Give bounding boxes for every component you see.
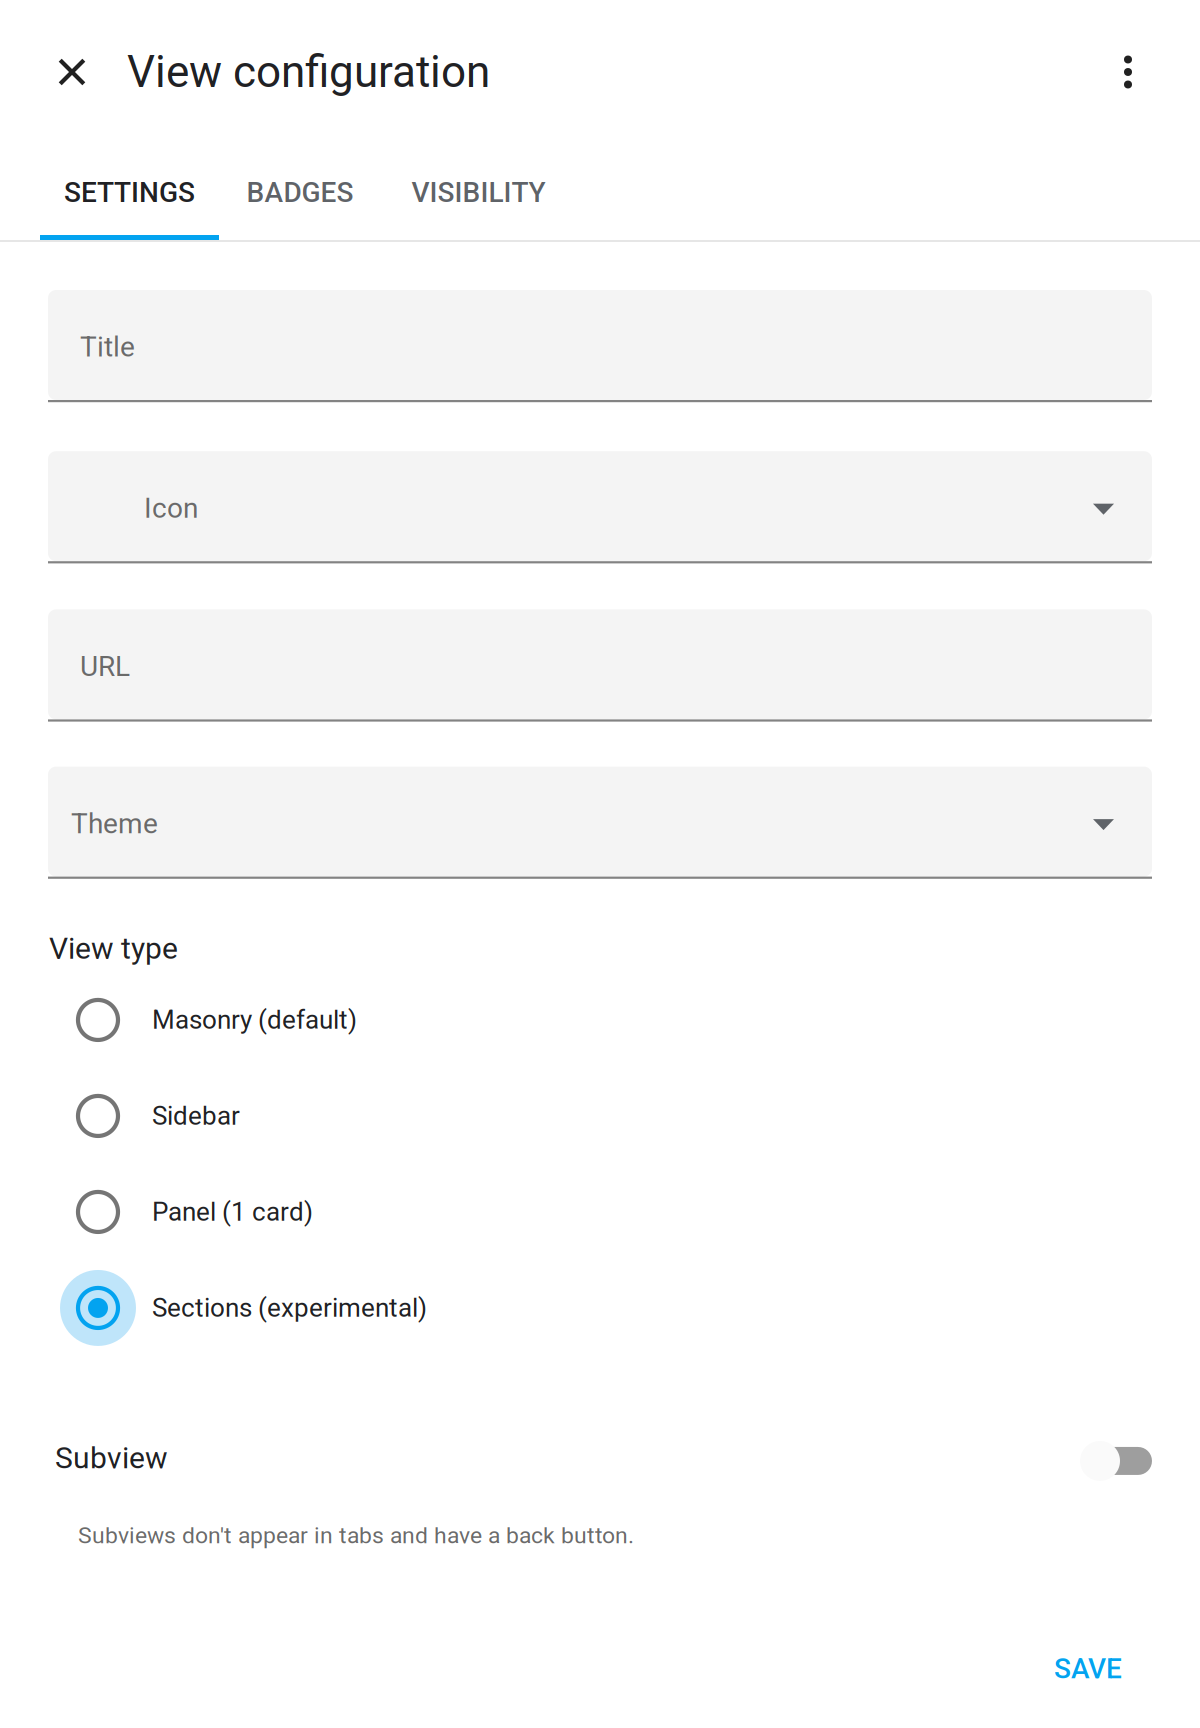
button[interactable]: Icon — [48, 451, 1152, 563]
button[interactable]: More options — [1094, 38, 1162, 106]
button[interactable]: SETTINGS — [40, 144, 219, 240]
button[interactable]: URL — [48, 609, 1152, 722]
button[interactable]: Masonry (default) — [50, 972, 1152, 1068]
button[interactable]: Sidebar — [50, 1068, 1152, 1164]
staticText: Sidebar — [152, 1101, 240, 1131]
button[interactable]: Title — [48, 290, 1152, 402]
button[interactable]: Subview toggle, off — [1080, 1430, 1152, 1486]
staticText: Masonry (default) — [152, 1005, 357, 1035]
button[interactable]: Close — [38, 38, 106, 106]
staticText: BADGES — [246, 176, 353, 209]
staticText: View configuration — [127, 46, 490, 98]
staticText: URL — [80, 650, 130, 683]
staticText: SETTINGS — [64, 176, 195, 209]
staticText: SAVE — [1054, 1652, 1122, 1685]
button[interactable]: VISIBILITY — [381, 144, 576, 240]
staticText: Theme — [71, 807, 158, 840]
staticText: Subviews don't appear in tabs and have a… — [78, 1522, 634, 1549]
staticText: Sections (experimental) — [152, 1293, 427, 1323]
staticText: Icon — [144, 492, 198, 525]
button[interactable]: Theme — [48, 767, 1152, 879]
button[interactable]: Panel (1 card) — [50, 1164, 1152, 1260]
staticText: Subview — [55, 1440, 168, 1476]
button[interactable]: Sections (experimental) — [50, 1260, 1152, 1356]
staticText: VISIBILITY — [411, 176, 545, 209]
staticText: Title — [80, 331, 135, 363]
staticText: View type — [49, 931, 178, 966]
button[interactable]: SAVE — [1024, 1623, 1152, 1700]
button[interactable]: BADGES — [219, 144, 381, 240]
staticText: Panel (1 card) — [152, 1197, 313, 1227]
